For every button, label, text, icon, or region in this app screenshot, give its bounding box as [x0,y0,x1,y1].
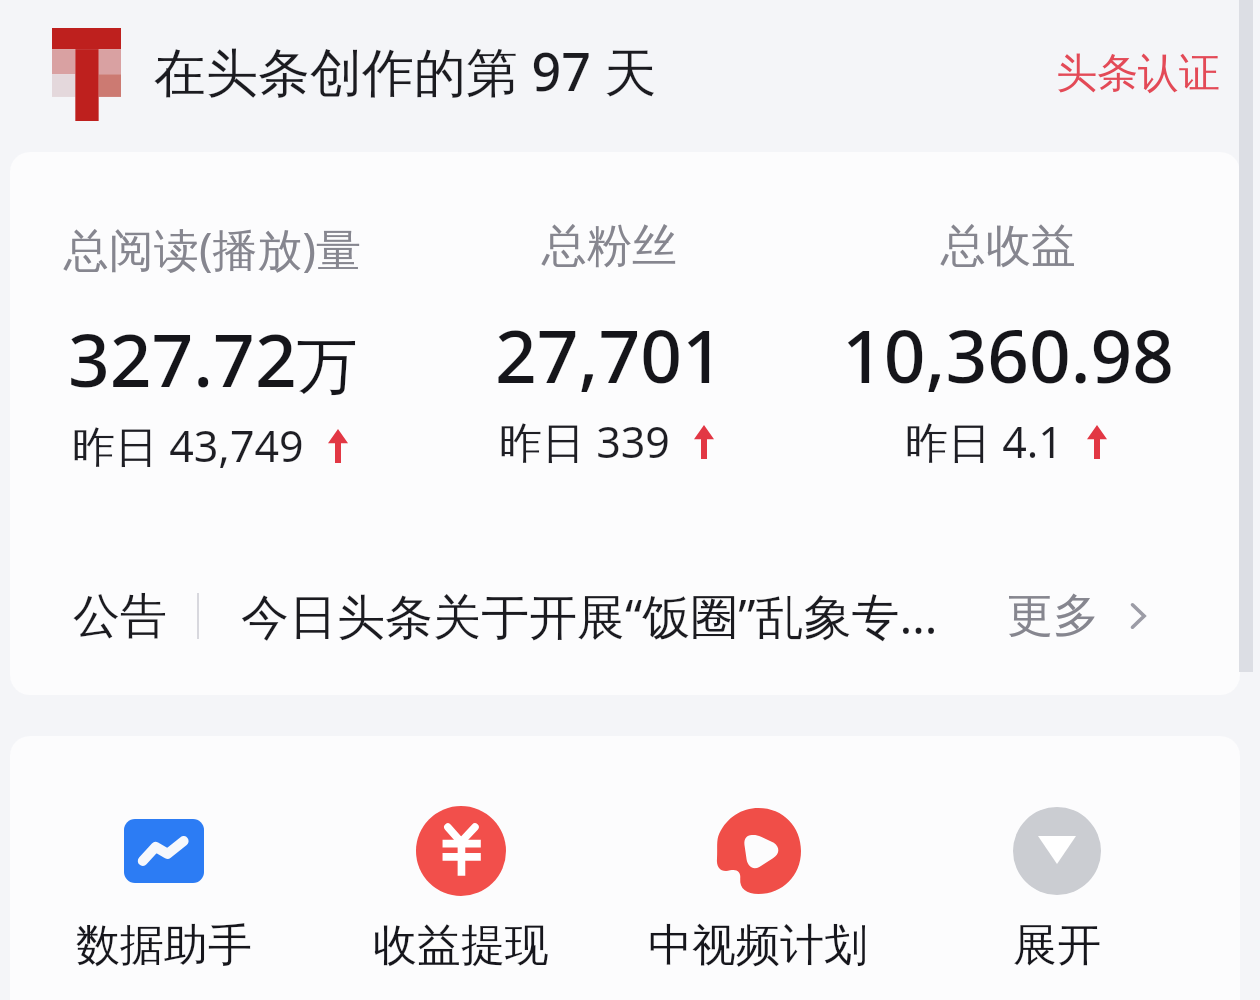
staticText: 10,360.98 [842,305,1175,404]
button[interactable]: 数据助手 [14,790,314,990]
button[interactable]: 头条认证 [1038,32,1238,108]
button[interactable]: 总收益 [812,200,1204,500]
staticText: 昨日 43,749 [72,416,304,475]
staticText: 今日头条关于开展“饭圈”乱象专… [241,583,938,649]
other: 展开 [1013,807,1101,895]
staticText: 在头条创作的第 97 天 [154,35,657,106]
button[interactable]: 总粉丝 [413,200,805,500]
staticText: 头条认证 [1056,48,1220,100]
staticText: 中视频计划 [648,918,868,973]
other: 数据助手 [124,819,204,883]
staticText: 总粉丝 [542,218,677,275]
button[interactable]: 中视频计划 [608,790,908,990]
staticText: 昨日 339 [499,412,670,471]
button[interactable]: 收益提现 [311,790,611,990]
staticText: 公告 [73,587,167,646]
staticText: 收益提现 [373,918,549,973]
button[interactable]: 总阅读(播放)量 [17,200,409,500]
staticText: 数据助手 [76,918,252,973]
staticText: 327.72万 [68,309,358,408]
staticText: 总阅读(播放)量 [64,218,362,279]
other: 中视频计划 [716,808,801,894]
button[interactable]: 展开 [907,790,1207,990]
staticText: 展开 [1013,918,1101,973]
staticText: 更多 [1007,587,1099,645]
button[interactable]: 公告 [10,570,1206,662]
staticText: 总收益 [941,218,1076,275]
other: 收益提现 [416,806,506,896]
staticText: 27,701 [495,305,724,404]
staticText: 昨日 4.1 [905,412,1063,471]
